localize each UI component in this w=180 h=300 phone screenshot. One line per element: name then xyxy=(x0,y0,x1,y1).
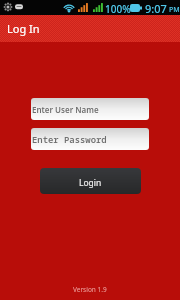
button[interactable]: Login xyxy=(40,168,141,194)
staticText: Enter User Name xyxy=(32,104,99,115)
staticText: Log In xyxy=(7,21,40,36)
staticText: 100% xyxy=(105,2,131,16)
staticText: PM xyxy=(169,5,180,15)
staticText: Login xyxy=(79,177,102,189)
button[interactable]: Enter Password xyxy=(31,128,149,150)
button[interactable]: Enter User Name xyxy=(31,98,149,120)
staticText: Enter Password xyxy=(32,133,107,145)
staticText: 9:07 xyxy=(145,1,167,16)
staticText: Version 1.9 xyxy=(73,285,107,294)
